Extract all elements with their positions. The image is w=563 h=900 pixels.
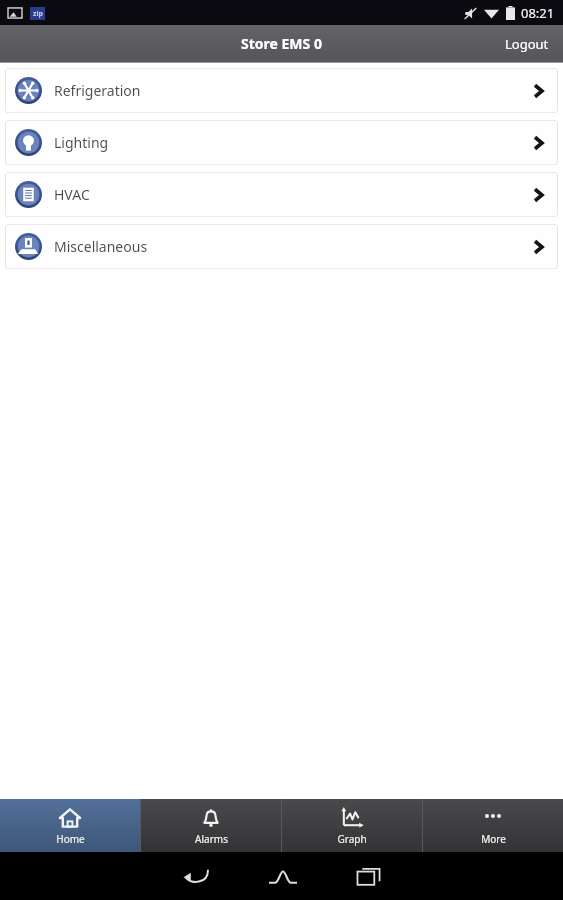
staticText: Store EMS 0 xyxy=(241,34,322,53)
button[interactable]: HVAC xyxy=(5,172,558,217)
button[interactable]: Alarms xyxy=(141,799,281,852)
staticText: HVAC xyxy=(54,185,90,204)
staticText: Home xyxy=(56,832,85,846)
button[interactable]: Recent apps xyxy=(327,858,411,894)
staticText: 08:21 xyxy=(521,4,555,22)
button[interactable]: Home xyxy=(0,799,140,852)
staticText: zip xyxy=(33,9,43,19)
staticText: Logout xyxy=(505,35,549,53)
staticText: Graph xyxy=(337,832,367,846)
staticText: Refrigeration xyxy=(54,81,141,100)
button[interactable]: Lighting xyxy=(5,120,558,165)
button[interactable]: Logout xyxy=(491,27,563,61)
staticText: Lighting xyxy=(54,133,109,152)
staticText: Miscellaneous xyxy=(54,237,148,256)
button[interactable]: Home xyxy=(239,860,327,892)
staticText: More xyxy=(481,832,506,846)
button[interactable]: Back xyxy=(153,858,239,894)
button[interactable]: Miscellaneous xyxy=(5,224,558,269)
button[interactable]: More xyxy=(423,799,563,852)
staticText: Alarms xyxy=(195,832,228,846)
button[interactable]: Refrigeration xyxy=(5,68,558,113)
button[interactable]: Graph xyxy=(282,799,422,852)
